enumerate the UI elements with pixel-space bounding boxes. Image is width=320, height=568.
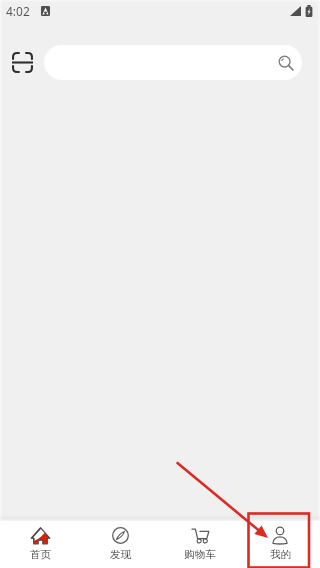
button[interactable]: 首页 xyxy=(0,521,80,565)
button[interactable]: 发现 xyxy=(80,521,160,565)
staticText: 4:02 xyxy=(6,3,30,19)
staticText: 发现 xyxy=(110,548,131,561)
button[interactable]: Scan xyxy=(12,52,33,73)
staticText: 首页 xyxy=(30,548,51,561)
button[interactable] xyxy=(44,45,302,80)
button[interactable]: 我的 xyxy=(240,521,320,565)
staticText: 我的 xyxy=(270,548,291,561)
button[interactable]: 购物车 xyxy=(160,521,240,565)
staticText: 购物车 xyxy=(184,548,216,561)
